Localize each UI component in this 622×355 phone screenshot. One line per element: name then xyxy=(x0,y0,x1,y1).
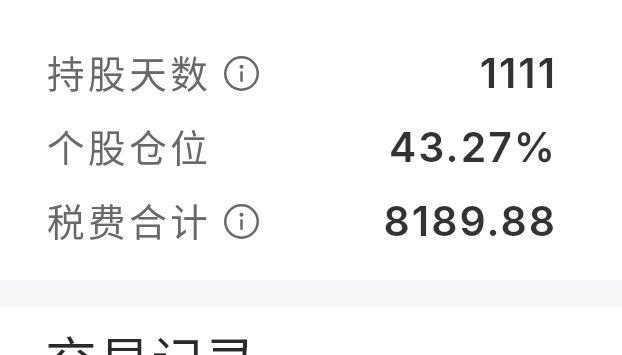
other: More information xyxy=(224,56,259,91)
button[interactable]: 个股仓位 xyxy=(0,110,622,184)
button[interactable]: 交易记录 xyxy=(0,321,622,355)
staticText: 个股仓位 xyxy=(47,118,212,172)
other: More information xyxy=(224,204,259,239)
staticText: 8189.88 xyxy=(383,196,557,246)
staticText: 43.27% xyxy=(389,122,557,172)
staticText: 1111 xyxy=(479,48,557,98)
staticText: 交易记录 xyxy=(45,321,258,355)
staticText: 持股天数 xyxy=(47,44,212,98)
button[interactable]: 税费合计 xyxy=(0,184,622,258)
staticText: 税费合计 xyxy=(47,192,212,246)
button[interactable]: 持股天数 xyxy=(0,36,622,110)
